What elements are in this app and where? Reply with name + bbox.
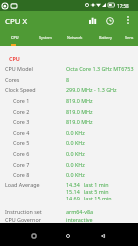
button[interactable]: Back bbox=[92, 225, 114, 246]
button[interactable]: Instruction set bbox=[0, 206, 138, 216]
staticText: Core 3 bbox=[13, 118, 30, 125]
staticText: Load Average bbox=[5, 181, 40, 188]
staticText: arm64-v8a bbox=[66, 208, 94, 215]
staticText: Core 6 bbox=[13, 150, 30, 157]
button[interactable]: Core 7 bbox=[0, 159, 138, 169]
button[interactable]: Core 4 bbox=[0, 127, 138, 137]
staticText: Octa Core 1.3 GHz MT6753 bbox=[66, 65, 134, 72]
button[interactable]: CPU Governor bbox=[0, 214, 138, 224]
staticText: Core 4 bbox=[13, 129, 30, 136]
staticText: 819.0 MHz bbox=[66, 97, 93, 104]
staticText: Battery bbox=[99, 35, 112, 40]
button[interactable]: More options bbox=[118, 11, 138, 29]
button[interactable]: Sens bbox=[120, 29, 138, 46]
button[interactable]: Cores bbox=[0, 74, 138, 84]
staticText: 14.34 last 1 min bbox=[66, 181, 109, 188]
staticText: CPU bbox=[11, 35, 19, 40]
staticText: 15.14 last 5 min bbox=[66, 188, 109, 195]
button[interactable]: System bbox=[30, 29, 60, 46]
staticText: 0.0 KHz bbox=[66, 129, 85, 136]
staticText: 17:58 bbox=[117, 3, 129, 9]
staticText: 299.0 MHz - 1.3 GHz bbox=[66, 86, 117, 93]
button[interactable]: History bbox=[101, 12, 118, 29]
button[interactable]: CPU Model bbox=[0, 63, 138, 73]
staticText: interactive bbox=[66, 216, 93, 223]
button[interactable]: CPU bbox=[0, 29, 30, 46]
staticText: 0.0 KHz bbox=[66, 139, 85, 146]
button[interactable]: Battery bbox=[90, 29, 120, 46]
staticText: Core 8 bbox=[13, 171, 30, 178]
button[interactable]: Core 1 bbox=[0, 95, 138, 105]
button[interactable]: Load Average bbox=[0, 179, 138, 200]
staticText: 819.0 MHz bbox=[66, 118, 93, 125]
staticText: Core 7 bbox=[13, 161, 30, 168]
button[interactable]: Core 5 bbox=[0, 137, 138, 147]
staticText: 819.0 MHz bbox=[66, 108, 93, 115]
staticText: Cores bbox=[5, 76, 20, 83]
staticText: Network bbox=[67, 35, 83, 40]
button[interactable]: Core 8 bbox=[0, 169, 138, 179]
staticText: CPU Governor bbox=[5, 216, 41, 223]
button[interactable]: Core 3 bbox=[0, 116, 138, 126]
button[interactable]: Statistics bbox=[84, 12, 101, 29]
staticText: CPU X bbox=[5, 16, 28, 27]
staticText: System bbox=[39, 35, 52, 40]
staticText: 0.0 KHz bbox=[66, 161, 85, 168]
button[interactable]: Recent apps bbox=[23, 225, 45, 246]
staticText: Clock Speed bbox=[5, 86, 36, 93]
staticText: 0.0 KHz bbox=[66, 150, 85, 157]
staticText: Core 2 bbox=[13, 108, 30, 115]
button[interactable]: Core 6 bbox=[0, 148, 138, 158]
button[interactable]: Network bbox=[60, 29, 90, 46]
button[interactable]: Core 2 bbox=[0, 106, 138, 116]
staticText: 8 bbox=[66, 76, 70, 83]
staticText: 14.69 last 15 min bbox=[66, 195, 112, 200]
staticText: Core 5 bbox=[13, 139, 30, 146]
staticText: 0.0 KHz bbox=[66, 171, 85, 178]
staticText: CPU bbox=[9, 55, 20, 62]
staticText: Instruction set bbox=[5, 208, 42, 215]
button[interactable]: Home bbox=[57, 225, 79, 246]
staticText: Core 1 bbox=[13, 97, 30, 104]
button[interactable]: Clock Speed bbox=[0, 84, 138, 94]
staticText: Sens bbox=[125, 35, 134, 40]
staticText: CPU Model bbox=[5, 65, 33, 72]
